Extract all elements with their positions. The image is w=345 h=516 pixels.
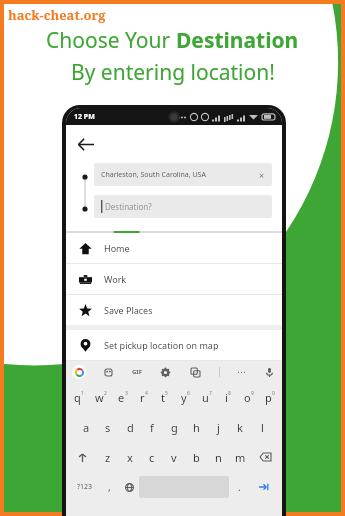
staticText: c xyxy=(149,450,155,465)
button[interactable]: Settings xyxy=(159,366,172,379)
staticText: Set pickup location on map xyxy=(104,339,219,351)
button[interactable]: p xyxy=(259,383,280,412)
staticText: Charleston, South Carolina, USA xyxy=(101,170,206,180)
button[interactable]: w xyxy=(90,383,112,412)
staticText: × xyxy=(259,169,265,181)
button[interactable]: f xyxy=(141,412,163,442)
staticText: x xyxy=(127,450,133,465)
button[interactable]: Next xyxy=(249,472,278,502)
staticText: l xyxy=(261,420,264,435)
button[interactable]: k xyxy=(229,412,251,442)
staticText: p xyxy=(265,390,272,405)
button[interactable]: Backspace xyxy=(251,442,280,472)
staticText: 9 xyxy=(251,390,254,397)
staticText: 6 xyxy=(187,390,190,397)
button[interactable]: Stickers xyxy=(102,366,115,379)
staticText: k xyxy=(237,420,243,435)
staticText: h xyxy=(193,420,200,435)
button[interactable]: Shift xyxy=(68,442,97,472)
staticText: s xyxy=(105,420,111,435)
button[interactable]: z xyxy=(97,442,119,472)
staticText: n xyxy=(215,450,222,465)
staticText: Save Places xyxy=(104,304,153,316)
staticText: Destination? xyxy=(105,201,152,212)
button[interactable]: Back xyxy=(66,125,104,163)
button[interactable]: Translate xyxy=(189,366,202,379)
staticText: ?123 xyxy=(77,482,93,492)
staticText: o xyxy=(244,390,251,405)
button[interactable]: Charleston, South Carolina, USA xyxy=(94,163,272,186)
staticText: 12 PM xyxy=(74,112,95,122)
button[interactable]: e xyxy=(112,383,133,412)
button[interactable]: Save Places xyxy=(66,295,282,325)
button[interactable]: j xyxy=(207,412,229,442)
staticText: u xyxy=(202,390,209,405)
button[interactable]: Period xyxy=(229,472,249,502)
button[interactable]: n xyxy=(207,442,229,472)
button[interactable]: More xyxy=(237,367,246,377)
staticText: Home xyxy=(104,242,130,254)
staticText: j xyxy=(217,420,220,435)
staticText: d xyxy=(127,420,134,435)
button[interactable]: m xyxy=(229,442,251,472)
staticText: 2 xyxy=(104,390,107,397)
staticText: e xyxy=(118,390,125,405)
staticText: hack-cheat.org xyxy=(8,6,106,24)
button[interactable]: ?123 xyxy=(70,472,99,502)
staticText: ⋯ xyxy=(237,367,246,377)
button[interactable]: i xyxy=(217,383,238,412)
staticText: r xyxy=(140,390,145,405)
staticText: z xyxy=(105,450,111,465)
staticText: 7 xyxy=(209,390,212,397)
staticText: w xyxy=(95,390,104,405)
staticText: GIF xyxy=(132,368,142,376)
button[interactable]: v xyxy=(163,442,185,472)
staticText: . xyxy=(238,480,241,494)
button[interactable]: Work xyxy=(66,264,282,294)
button[interactable]: r xyxy=(133,383,154,412)
staticText: 1 xyxy=(81,390,84,397)
button[interactable]: Voice input xyxy=(263,366,276,379)
staticText: q xyxy=(74,390,81,405)
staticText: y xyxy=(181,390,187,405)
button[interactable]: t xyxy=(154,383,175,412)
button[interactable]: Language xyxy=(119,472,139,502)
button[interactable]: d xyxy=(119,412,141,442)
button[interactable]: GIF xyxy=(132,368,142,376)
button[interactable]: Google xyxy=(72,365,86,379)
button[interactable]: l xyxy=(251,412,273,442)
staticText: Destination xyxy=(176,26,299,55)
button[interactable]: q xyxy=(68,383,90,412)
staticText: i xyxy=(225,390,228,405)
staticText: 4 xyxy=(145,390,148,397)
staticText: 8 xyxy=(228,390,231,397)
button[interactable]: y xyxy=(175,383,196,412)
button[interactable]: g xyxy=(163,412,185,442)
button[interactable]: Comma xyxy=(99,472,119,502)
staticText: t xyxy=(161,390,165,405)
staticText: Work xyxy=(104,273,127,285)
button[interactable]: b xyxy=(185,442,207,472)
staticText: g xyxy=(171,420,178,435)
staticText: v xyxy=(171,450,177,465)
button[interactable]: Destination? xyxy=(94,195,272,218)
button[interactable]: a xyxy=(75,412,97,442)
staticText: By entering location! xyxy=(71,58,275,87)
button[interactable]: c xyxy=(141,442,163,472)
staticText: 0 xyxy=(272,390,275,397)
staticText: Choose Your xyxy=(46,26,176,55)
button[interactable]: s xyxy=(97,412,119,442)
staticText: m xyxy=(235,450,246,465)
staticText: , xyxy=(108,480,111,494)
button[interactable]: Home xyxy=(66,233,282,263)
staticText: 3 xyxy=(125,390,128,397)
staticText: 5 xyxy=(165,390,168,397)
button[interactable]: o xyxy=(238,383,259,412)
button[interactable]: h xyxy=(185,412,207,442)
button[interactable]: x xyxy=(119,442,141,472)
staticText: b xyxy=(193,450,200,465)
button[interactable]: Set pickup location on map xyxy=(66,330,282,360)
staticText: f xyxy=(150,420,154,435)
button[interactable]: u xyxy=(196,383,217,412)
